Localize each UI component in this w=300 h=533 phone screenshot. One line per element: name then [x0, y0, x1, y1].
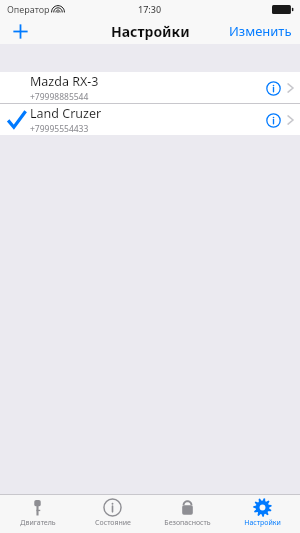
button[interactable]: Двигатель: [0, 495, 75, 533]
staticText: Оператор: [7, 3, 50, 15]
staticText: Двигатель: [20, 518, 56, 528]
staticText: Настройки: [244, 518, 281, 528]
button[interactable]: Mazda RX-3: [0, 72, 300, 103]
button[interactable]: Изменить: [221, 18, 300, 44]
button[interactable]: Добавить: [0, 18, 40, 44]
button[interactable]: Land Cruzer: [0, 104, 300, 135]
staticText: Безопасность: [164, 518, 211, 528]
staticText: +79998885544: [30, 91, 89, 103]
staticText: Состояние: [95, 518, 131, 528]
staticText: Изменить: [229, 22, 292, 40]
button[interactable]: Безопасность: [150, 495, 225, 533]
staticText: Land Cruzer: [30, 105, 102, 122]
staticText: 17:30: [138, 3, 162, 15]
staticText: Mazda RX-3: [30, 73, 99, 90]
staticText: +79995554433: [30, 123, 89, 135]
button[interactable]: Состояние: [75, 495, 150, 533]
button[interactable]: Информация: [261, 76, 285, 100]
staticText: Настройки: [111, 22, 190, 41]
button[interactable]: Информация: [261, 108, 285, 132]
button[interactable]: Настройки: [225, 495, 300, 533]
